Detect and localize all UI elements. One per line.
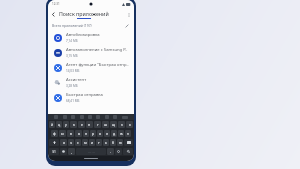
button[interactable]: у [63,121,69,128]
button[interactable]: с [75,139,81,146]
staticText: Всего приложений (197) [52,23,92,28]
button[interactable]: ч [68,139,74,146]
button[interactable]: Ещё [123,9,134,20]
button[interactable]: Агент функции "Быстрая отпр.. [48,60,134,75]
button[interactable]: Назад [48,9,59,20]
staticText: 68,41 МБ [66,99,80,103]
button[interactable]: Настройки [115,148,122,155]
staticText: . [110,149,111,154]
button[interactable]: Назад [48,8,134,21]
staticText: з [121,122,123,127]
staticText: ж [120,131,123,136]
button[interactable]: Эмодзи [60,148,67,155]
button[interactable]: ь [103,139,109,146]
button[interactable]: е [78,121,85,128]
staticText: г [97,122,99,127]
button[interactable]: л [104,130,110,137]
staticText: ь [105,140,107,145]
button[interactable]: т [96,139,102,146]
button[interactable]: н [86,121,93,128]
staticText: щ [112,122,116,127]
staticText: ш [104,122,108,127]
button[interactable]: б [110,139,116,146]
staticText: . . . . . . [88,150,95,153]
button[interactable]: Быстрая отправка [48,90,134,105]
staticText: , [71,149,72,154]
staticText: р [92,131,95,136]
button[interactable]: п [83,130,89,137]
staticText: в [70,131,72,136]
staticText: Ассистент [66,77,87,83]
button[interactable]: Поиск [123,148,133,155]
button[interactable]: щ [110,121,117,128]
button[interactable]: м [82,139,88,146]
staticText: ы [61,131,64,136]
button[interactable]: ы [59,130,66,137]
button[interactable]: г [94,121,101,128]
button[interactable]: ш [102,121,109,128]
button[interactable]: а [75,130,82,137]
staticText: 3,28 МБ [66,84,78,88]
staticText: Агент функции "Быстрая отпр.. [66,62,129,68]
button[interactable]: ц [56,121,62,128]
staticText: 14,03 МБ [66,69,80,73]
staticText: й [51,122,54,127]
staticText: ч [70,140,72,145]
staticText: н [88,122,91,127]
staticText: к [73,122,75,127]
staticText: а [78,131,80,136]
button[interactable]: в [67,130,74,137]
button[interactable]: Символы [49,148,59,155]
button[interactable]: ю [117,139,123,146]
staticText: б [112,140,115,145]
button[interactable]: Ассистент [48,75,134,90]
staticText: и [91,140,94,145]
staticText: 7,14 МБ [66,39,78,43]
button[interactable]: ж [118,130,124,137]
staticText: с [77,140,79,145]
button[interactable]: о [97,130,103,137]
staticText: 12:31 [52,2,60,6]
staticText: х [129,122,131,127]
button[interactable]: р [90,130,96,137]
staticText: п [85,131,88,136]
staticText: Автоблокировка [66,32,100,38]
button[interactable]: к [70,121,77,128]
button[interactable]: Автоблокировка [48,30,134,45]
button[interactable]: . [107,148,114,155]
staticText: э [127,131,129,136]
button[interactable]: х [126,121,133,128]
staticText: л [106,131,108,136]
staticText: м [84,140,87,145]
button[interactable]: Сортировка [123,22,130,29]
button[interactable]: , [68,148,75,155]
button[interactable]: я [60,139,67,146]
staticText: у [65,122,67,127]
button[interactable]: д [111,130,117,137]
staticText: е [81,122,83,127]
button[interactable]: Shift [49,139,59,146]
staticText: о [99,131,102,136]
button[interactable]: ф [51,130,58,137]
staticText: т [98,140,100,145]
staticText: !#1 [52,150,56,154]
staticText: Автозаполнение с Samsung P.. [66,47,128,53]
button[interactable]: Удалить [124,139,133,146]
button[interactable]: и [89,139,95,146]
button[interactable]: з [118,121,125,128]
staticText: Быстрая отправка [66,92,103,98]
button[interactable]: э [125,130,131,137]
staticText: я [63,140,65,145]
button[interactable]: Автозаполнение с Samsung P.. [48,45,134,60]
button[interactable]: й [49,121,55,128]
